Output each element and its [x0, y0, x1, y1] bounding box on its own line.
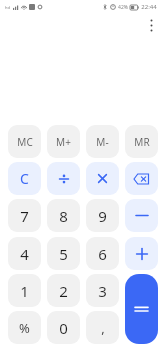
button[interactable]: Equals	[125, 274, 158, 344]
staticText: 9	[98, 206, 107, 226]
staticText: MR	[134, 135, 150, 149]
button[interactable]: More options	[140, 14, 162, 36]
staticText: ,	[101, 319, 105, 337]
staticText: 7	[20, 206, 29, 226]
staticText: 2	[59, 281, 68, 301]
button[interactable]: MR	[125, 125, 158, 158]
button[interactable]: Divide	[47, 162, 80, 195]
button[interactable]: 0	[47, 311, 80, 344]
button[interactable]: 7	[8, 199, 41, 232]
staticText: M-	[96, 135, 109, 149]
button[interactable]: 1	[8, 274, 41, 307]
staticText: 1	[20, 281, 29, 301]
staticText: MC	[17, 135, 33, 149]
staticText: %	[19, 319, 30, 337]
button[interactable]: 2	[47, 274, 80, 307]
staticText: C	[20, 169, 29, 188]
button[interactable]: ,	[86, 311, 119, 344]
staticText: hd	[5, 5, 10, 10]
button[interactable]: C	[8, 162, 41, 195]
button[interactable]: 6	[86, 237, 119, 270]
staticText: 0	[59, 318, 68, 338]
staticText: 5	[59, 244, 68, 264]
staticText: 4	[20, 244, 29, 264]
button[interactable]: 4	[8, 237, 41, 270]
button[interactable]: %	[8, 311, 41, 344]
staticText: 3	[98, 281, 107, 301]
staticText: 8	[59, 206, 68, 226]
button[interactable]: 8	[47, 199, 80, 232]
staticText: 6	[98, 244, 107, 264]
button[interactable]: MC	[8, 125, 41, 158]
staticText: 42%	[118, 4, 128, 11]
button[interactable]: Plus	[125, 237, 158, 270]
button[interactable]: M+	[47, 125, 80, 158]
button[interactable]: 3	[86, 274, 119, 307]
button[interactable]: 5	[47, 237, 80, 270]
button[interactable]: Multiply	[86, 162, 119, 195]
button[interactable]: M-	[86, 125, 119, 158]
staticText: 22:44	[141, 3, 157, 11]
button[interactable]: Minus	[125, 199, 158, 232]
button[interactable]: Backspace	[125, 162, 158, 195]
button[interactable]: 9	[86, 199, 119, 232]
staticText: M+	[56, 135, 71, 149]
